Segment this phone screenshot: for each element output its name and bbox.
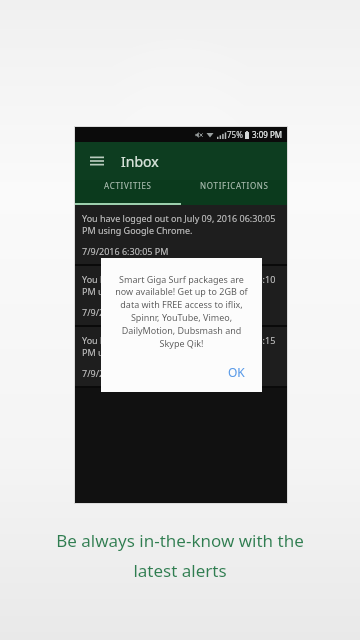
button[interactable]: ACTIVITIES (75, 180, 181, 191)
button[interactable]: NOTIFICATIONS (181, 180, 287, 191)
staticText: You have logged out on July 09, 2016 06:… (82, 273, 280, 298)
staticText: Smart Giga Surf packages are now availab… (113, 273, 250, 350)
staticText: 75% (227, 129, 243, 140)
staticText: Inbox (121, 152, 159, 171)
button[interactable]: Open navigation menu (85, 149, 109, 173)
staticText: You have logged out on July 09, 2016 05:… (82, 334, 280, 359)
staticText: NOTIFICATIONS (200, 180, 269, 191)
button[interactable]: You have logged out on July 09, 2016 05:… (75, 327, 287, 386)
staticText: 7/9/2016 6:30:05 PM (82, 245, 169, 257)
staticText: ACTIVITIES (104, 180, 152, 191)
staticText: 3:09 PM (252, 129, 283, 140)
staticText: You have logged out on July 09, 2016 06:… (82, 212, 280, 237)
staticText: OK (228, 364, 245, 380)
button[interactable]: You have logged out on July 09, 2016 06:… (75, 205, 287, 264)
staticText: Be always in-the-know with the (56, 529, 304, 552)
button[interactable]: OK (223, 361, 250, 383)
button[interactable]: You have logged out on July 09, 2016 06:… (75, 266, 287, 325)
staticText: latest alerts (133, 559, 227, 582)
staticText: 7/9/2016 6:05:10 PM (82, 306, 169, 318)
staticText: 7/9/2016 5:35:15 PM (82, 367, 169, 379)
